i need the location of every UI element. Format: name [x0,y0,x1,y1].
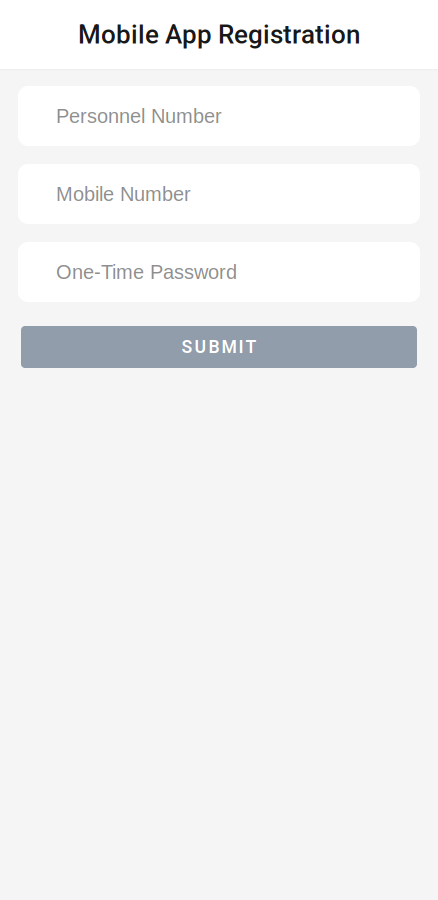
staticText: S U B M I T [181,337,256,357]
button[interactable]: S U B M I T [18,326,420,368]
button[interactable]: Mobile Number [18,164,420,224]
staticText: Mobile Number [56,183,191,205]
staticText: Personnel Number [56,105,222,127]
staticText: Mobile App Registration [78,19,360,50]
button[interactable]: One-Time Password [18,242,420,302]
staticText: One-Time Password [56,261,237,283]
button[interactable]: Personnel Number [18,86,420,146]
